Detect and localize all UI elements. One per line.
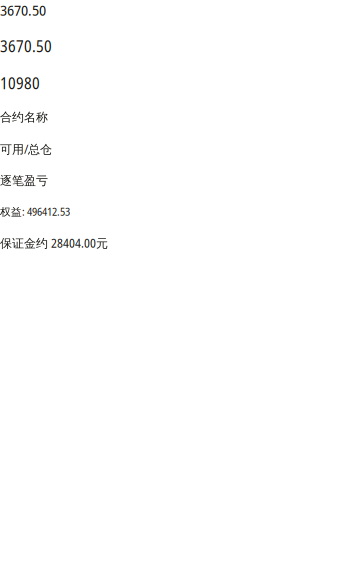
staticText: 3670.50: [0, 0, 46, 20]
staticText: 权益: 496412.53: [0, 204, 70, 219]
staticText: 合约名称: [0, 110, 48, 125]
staticText: 3670.50: [0, 36, 52, 57]
staticText: 10980: [0, 73, 40, 94]
staticText: 保证金约 28404.00元: [0, 235, 108, 251]
staticText: 逐笔盈亏: [0, 173, 48, 188]
staticText: 可用/总仓: [0, 141, 52, 157]
